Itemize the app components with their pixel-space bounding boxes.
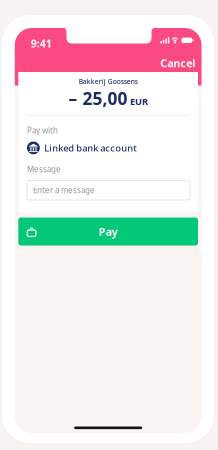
staticText: Enter a message — [33, 185, 95, 195]
button[interactable]: Linked bank account — [27, 141, 189, 154]
button[interactable]: Cancel — [155, 52, 200, 74]
staticText: Pay — [99, 224, 118, 239]
button[interactable]: Pay — [18, 217, 198, 245]
staticText: Pay with — [27, 125, 58, 136]
staticText: Message — [27, 164, 61, 174]
staticText: Cancel — [160, 56, 195, 70]
staticText: EUR — [130, 95, 148, 108]
staticText: 9:41 — [31, 36, 52, 50]
staticText: Bakkerij Goossens — [79, 77, 138, 86]
staticText: – 25,00 — [68, 87, 127, 110]
button[interactable]: Enter a message — [27, 180, 190, 200]
staticText: Linked bank account — [44, 142, 137, 154]
